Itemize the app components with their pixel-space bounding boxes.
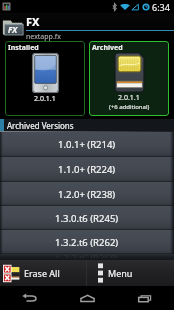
button[interactable]: Installed bbox=[5, 41, 85, 116]
staticText: 1.3.3.t6 (R268) bbox=[55, 252, 119, 258]
button[interactable]: 1.3.2.t6 (R262) bbox=[0, 230, 174, 254]
staticText: Erase All bbox=[24, 267, 60, 279]
button[interactable]: 1.3.0.t6 (R245) bbox=[0, 206, 174, 230]
staticText: Menu bbox=[108, 267, 133, 279]
button[interactable]: 1.1.0+ (R224) bbox=[0, 157, 174, 182]
staticText: 1.0.1+ (R214) bbox=[58, 138, 116, 151]
staticText: 2.0.1.1 bbox=[118, 93, 140, 103]
staticText: nextapp.fx bbox=[26, 32, 61, 41]
staticText: 1.2.0+ (R238) bbox=[58, 188, 116, 201]
button[interactable]: Archived bbox=[89, 41, 169, 116]
button[interactable]: 1.2.0+ (R238) bbox=[0, 182, 174, 206]
staticText: FX bbox=[26, 14, 40, 29]
staticText: Archived bbox=[92, 43, 123, 53]
button[interactable]: Erase All bbox=[0, 260, 87, 286]
staticText: 1.3.0.t6 (R245) bbox=[55, 212, 119, 225]
button[interactable]: Recent apps bbox=[116, 286, 174, 310]
button[interactable]: Menu bbox=[87, 260, 174, 286]
staticText: Installed bbox=[8, 43, 39, 53]
button[interactable]: 1.0.1+ (R214) bbox=[0, 132, 174, 157]
staticText: 6:34 bbox=[152, 1, 170, 13]
button[interactable]: Back bbox=[0, 286, 58, 310]
staticText: Archived Versions bbox=[7, 120, 74, 131]
staticText: 2.0.1.1 bbox=[34, 94, 56, 104]
button[interactable]: Home bbox=[58, 286, 116, 310]
staticText: (+6 additional) bbox=[109, 103, 150, 111]
staticText: FX bbox=[8, 24, 18, 35]
staticText: 1.3.2.t6 (R262) bbox=[55, 236, 119, 249]
staticText: 1.1.0+ (R224) bbox=[58, 163, 116, 176]
